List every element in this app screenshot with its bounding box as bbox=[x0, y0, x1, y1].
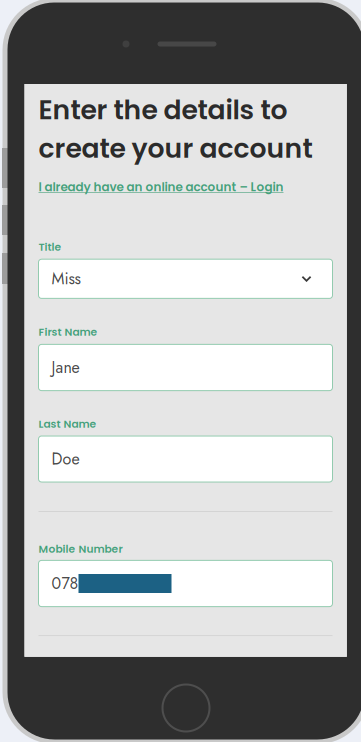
staticText: Doe bbox=[51, 447, 79, 470]
staticText: 078 bbox=[51, 572, 78, 595]
staticText: Mobile Number bbox=[38, 541, 122, 556]
staticText: Title bbox=[38, 239, 61, 254]
staticText: Last Name bbox=[38, 416, 96, 431]
staticText: I already have an online account – Login bbox=[38, 179, 283, 195]
staticText: Enter the details to bbox=[38, 91, 287, 129]
staticText: First Name bbox=[38, 324, 97, 339]
button[interactable]: 078 bbox=[38, 560, 332, 607]
staticText: create your account bbox=[38, 130, 312, 167]
button[interactable]: I already have an online account – Login bbox=[38, 179, 332, 195]
staticText: Jane bbox=[51, 356, 79, 379]
button[interactable]: Jane bbox=[38, 344, 332, 391]
staticText: Miss bbox=[51, 267, 80, 290]
button[interactable]: Miss bbox=[38, 259, 332, 298]
button[interactable]: Doe bbox=[38, 436, 332, 482]
